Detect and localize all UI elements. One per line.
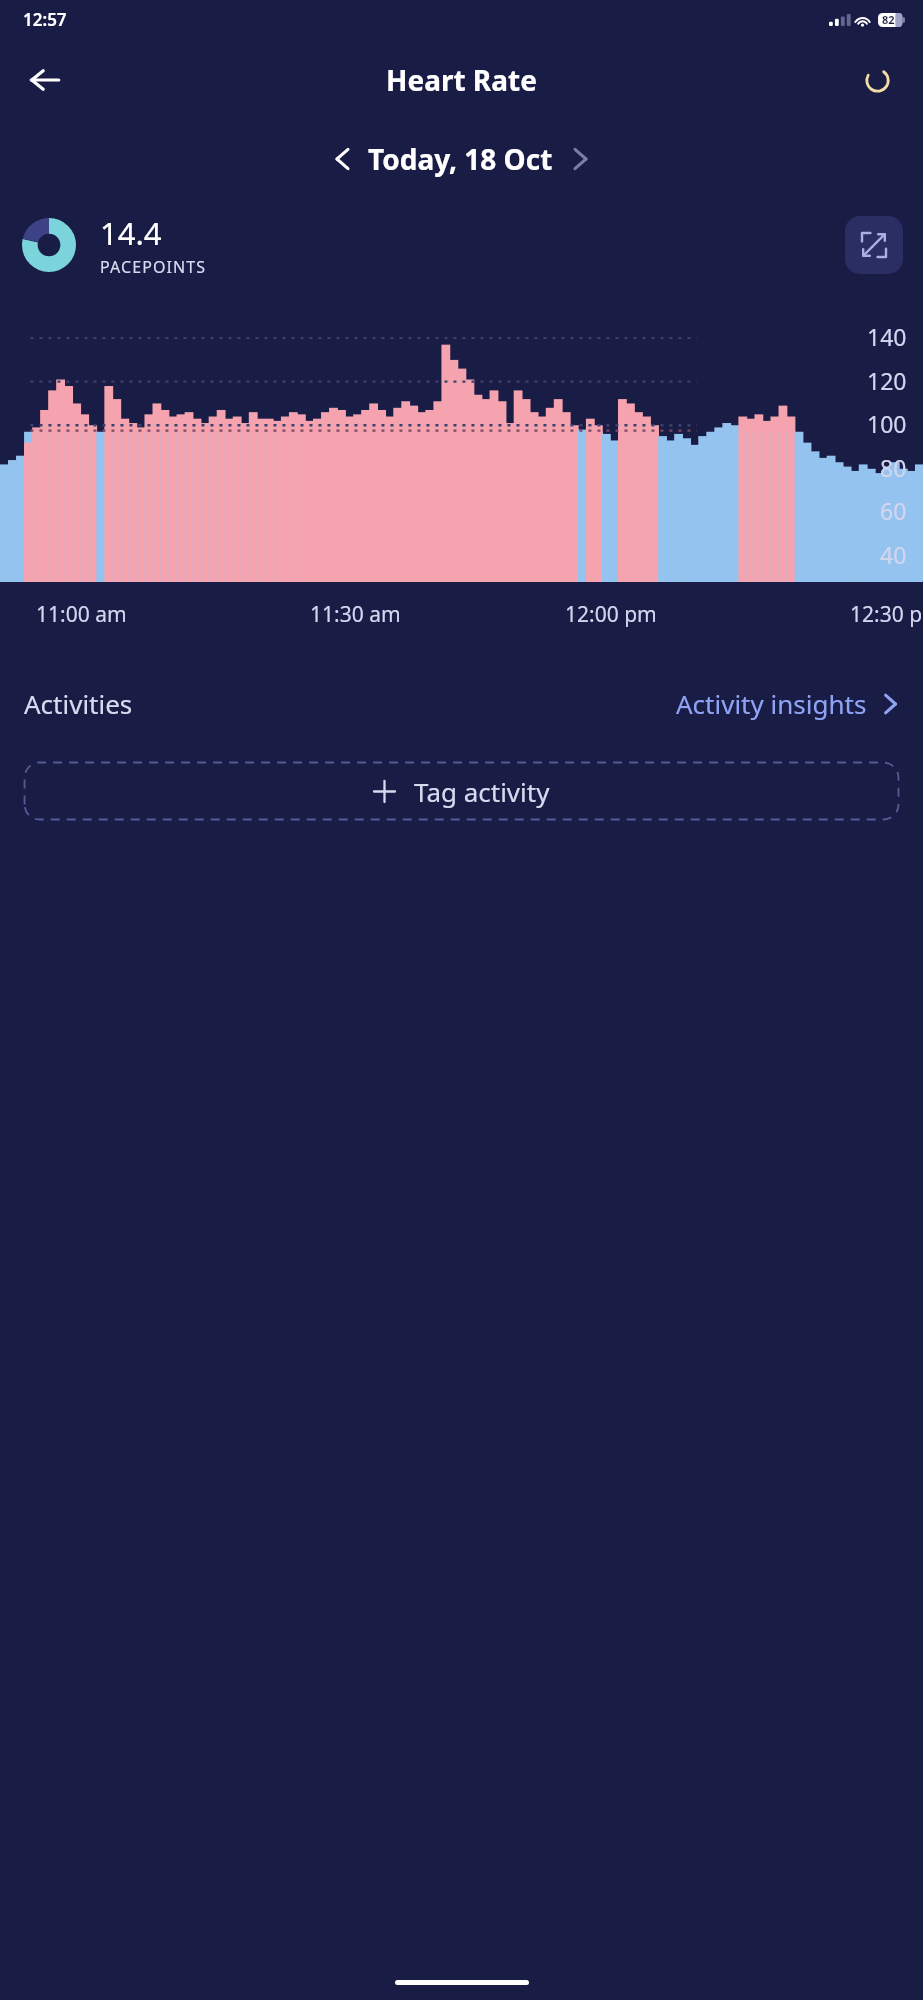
button[interactable]: Next day <box>561 139 601 179</box>
staticText: 11:30 am <box>310 600 401 629</box>
staticText: Tag activity <box>414 774 550 809</box>
staticText: 12:30 p <box>850 600 923 629</box>
staticText: 100 <box>867 408 907 439</box>
staticText: PACEPOINTS <box>100 256 207 278</box>
button[interactable]: Tag activity <box>23 761 900 821</box>
staticText: 82 <box>882 12 895 27</box>
button[interactable]: Activities <box>24 686 133 721</box>
staticText: Activity insights <box>676 686 867 721</box>
button[interactable]: Refresh <box>851 54 903 106</box>
button[interactable]: Today, 18 Oct <box>368 140 553 178</box>
button[interactable]: Back <box>16 51 74 109</box>
staticText: 120 <box>867 365 907 396</box>
button[interactable]: Collapse chart <box>845 216 903 274</box>
staticText: Heart Rate <box>386 61 537 99</box>
button[interactable]: Activity insights <box>676 678 901 729</box>
staticText: 11:00 am <box>36 600 127 629</box>
staticText: 80 <box>880 452 907 483</box>
button[interactable]: Previous day <box>322 139 362 179</box>
staticText: 14.4 <box>100 212 162 254</box>
staticText: 140 <box>867 321 907 352</box>
staticText: 40 <box>880 539 907 570</box>
staticText: 60 <box>880 495 907 526</box>
staticText: 12:00 pm <box>565 600 657 629</box>
staticText: 12:57 <box>23 8 67 31</box>
